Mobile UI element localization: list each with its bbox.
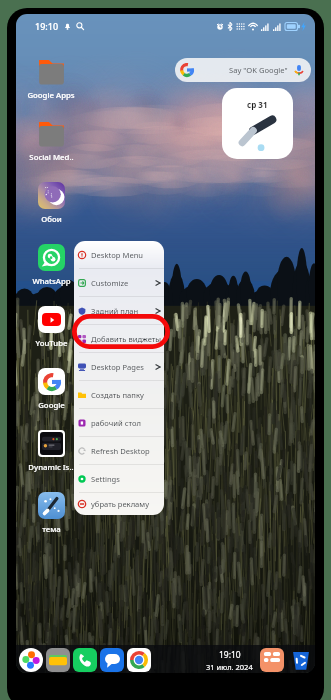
button[interactable]: YouTube xyxy=(17,306,85,349)
button[interactable]: Messages xyxy=(100,648,124,672)
staticText: YouTube xyxy=(35,338,68,349)
staticText: Создать папку xyxy=(91,390,144,400)
button[interactable]: тема xyxy=(17,492,85,535)
staticText: 19:10 xyxy=(35,20,59,32)
button[interactable]: рабочий стол xyxy=(74,409,164,436)
button[interactable]: Создать папку xyxy=(74,381,164,408)
button[interactable]: WhatsApp xyxy=(17,244,85,287)
staticText: ср 31 xyxy=(247,99,268,110)
button[interactable]: Добавить виджеты xyxy=(74,325,164,352)
button[interactable]: Settings xyxy=(74,465,164,492)
staticText: Google xyxy=(38,400,65,411)
staticText: 31 июл. 2024 xyxy=(206,662,253,672)
button[interactable]: Desktop Pages xyxy=(74,353,164,380)
staticText: Social Med.. xyxy=(29,152,74,163)
staticText: Settings xyxy=(91,474,120,484)
button[interactable]: Files xyxy=(46,648,70,672)
staticText: 19:10 xyxy=(219,649,241,661)
button[interactable]: Refresh Desktop xyxy=(74,437,164,464)
button[interactable]: Dynamic Is.. xyxy=(17,430,85,473)
staticText: Customize xyxy=(91,278,129,288)
staticText: Dynamic Is.. xyxy=(28,462,74,473)
staticText: Say "OK Google" xyxy=(229,65,288,75)
staticText: тема xyxy=(42,524,61,535)
button[interactable]: Social Med.. xyxy=(17,120,85,163)
button[interactable]: Задний план xyxy=(74,297,164,324)
staticText: Обои xyxy=(41,214,62,225)
button[interactable]: Chrome xyxy=(127,648,151,672)
staticText: Задний план xyxy=(91,306,139,316)
staticText: Google Apps xyxy=(27,90,75,101)
staticText: рабочий стол xyxy=(91,418,141,428)
button[interactable]: Trash xyxy=(289,648,313,672)
button[interactable]: Google Apps xyxy=(17,58,85,101)
staticText: Desktop Pages xyxy=(91,362,144,372)
staticText: Refresh Desktop xyxy=(91,446,150,456)
staticText: Добавить виджеты xyxy=(91,334,161,344)
button[interactable]: Google xyxy=(17,368,85,411)
staticText: убрать рекламу xyxy=(91,499,150,509)
button[interactable]: убрать рекламу xyxy=(74,493,164,515)
button[interactable]: Say "OK Google" xyxy=(175,58,311,82)
button[interactable]: Обои xyxy=(17,182,85,225)
button[interactable]: Gallery xyxy=(19,648,43,672)
staticText: Desktop Menu xyxy=(91,250,144,260)
button[interactable]: Customize xyxy=(74,269,164,296)
button[interactable]: Phone xyxy=(73,648,97,672)
button[interactable]: ср 31 xyxy=(222,88,293,159)
staticText: WhatsApp xyxy=(32,276,71,287)
button[interactable]: Desktop Menu xyxy=(74,241,164,268)
button[interactable]: Calculator xyxy=(260,648,284,672)
